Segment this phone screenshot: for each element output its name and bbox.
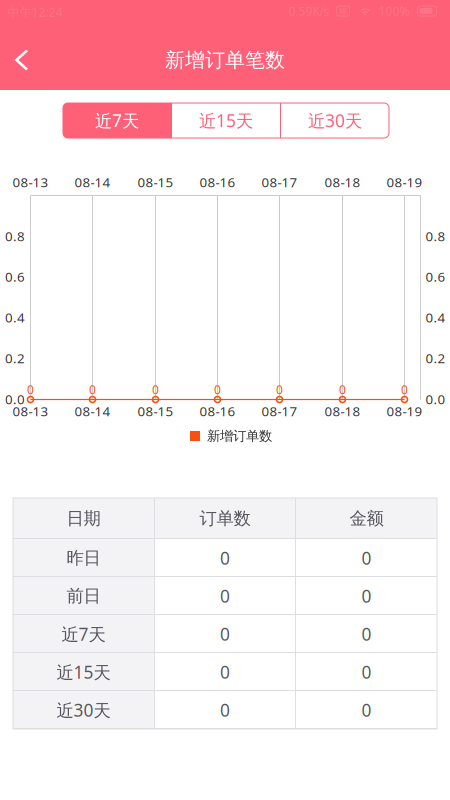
staticText: 0 (361, 546, 371, 569)
staticText: 08-17 (261, 173, 297, 191)
staticText: 08-13 (12, 173, 48, 191)
staticText: 08-14 (74, 402, 110, 420)
staticText: 新增订单笔数 (165, 48, 285, 72)
staticText: 0.59K/s (288, 3, 329, 19)
staticText: 日期 (66, 508, 100, 529)
staticText: 0 (361, 698, 371, 721)
staticText: 08-15 (137, 402, 173, 420)
staticText: 0 (89, 381, 96, 397)
staticText: 0.2 (5, 349, 25, 367)
staticText: 前日 (66, 585, 100, 607)
staticText: 08-17 (261, 402, 297, 420)
staticText: 0 (361, 622, 371, 645)
staticText: 0.8 (425, 227, 445, 245)
button[interactable]: Back (0, 26, 42, 86)
staticText: 08-19 (386, 402, 422, 420)
staticText: 近7天 (95, 109, 139, 132)
button[interactable]: 近30天 (281, 103, 389, 138)
staticText: 08-18 (324, 173, 360, 191)
staticText: 08-14 (74, 173, 110, 191)
staticText: 0.4 (425, 308, 445, 326)
staticText: 0 (220, 698, 230, 721)
staticText: 08-18 (324, 402, 360, 420)
staticText: 0 (339, 381, 346, 397)
staticText: 0 (361, 660, 371, 683)
staticText: 0 (276, 381, 283, 397)
staticText: 0.0 (425, 390, 445, 408)
staticText: 0.0 (5, 390, 25, 408)
staticText: 0 (220, 622, 230, 645)
staticText: 近15天 (56, 660, 110, 683)
staticText: 近30天 (56, 698, 110, 721)
staticText: 0.2 (425, 349, 445, 367)
staticText: 0 (401, 381, 408, 397)
staticText: 订单数 (199, 508, 250, 529)
staticText: 0 (152, 381, 159, 397)
button[interactable]: 近15天 (172, 103, 280, 138)
staticText: 08-15 (137, 173, 173, 191)
staticText: 0.8 (5, 227, 25, 245)
staticText: 近15天 (199, 109, 253, 132)
staticText: 中午12:24 (7, 4, 62, 20)
staticText: 0.6 (425, 268, 445, 285)
staticText: 0 (27, 381, 34, 397)
staticText: 0.6 (5, 268, 25, 285)
staticText: 08-19 (386, 173, 422, 191)
staticText: 新增订单数 (207, 428, 272, 444)
staticText: 0.4 (5, 308, 25, 326)
button[interactable]: 近7天 (63, 103, 171, 138)
staticText: 0 (220, 584, 230, 607)
staticText: 0 (361, 584, 371, 607)
staticText: 100% (378, 3, 409, 19)
staticText: 08-16 (199, 402, 235, 420)
staticText: 近7天 (61, 622, 105, 645)
staticText: 08-16 (199, 173, 235, 191)
staticText: 昨日 (66, 547, 100, 569)
staticText: 0 (214, 381, 221, 397)
staticText: 0 (220, 660, 230, 683)
staticText: 08-13 (12, 402, 48, 420)
staticText: 近30天 (308, 109, 362, 132)
staticText: 0 (220, 546, 230, 569)
staticText: 金额 (349, 508, 383, 529)
